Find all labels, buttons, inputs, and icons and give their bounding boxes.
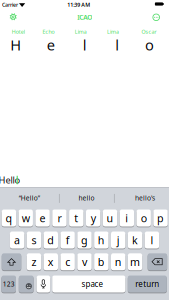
staticText: y bbox=[91, 211, 96, 225]
button[interactable]: Settings bbox=[6, 10, 20, 24]
button[interactable]: 123 bbox=[1, 275, 16, 293]
staticText: g bbox=[81, 233, 88, 247]
staticText: ICAO bbox=[77, 13, 92, 22]
button[interactable]: hello's bbox=[118, 188, 169, 207]
button[interactable]: l bbox=[145, 231, 159, 249]
staticText: w bbox=[22, 211, 30, 225]
button[interactable]: space bbox=[52, 275, 125, 293]
staticText: o bbox=[141, 211, 147, 225]
button[interactable]: Dictate bbox=[37, 275, 50, 293]
staticText: s bbox=[31, 233, 36, 247]
button[interactable]: v bbox=[77, 253, 92, 271]
staticText: o bbox=[145, 35, 154, 55]
button[interactable]: i bbox=[120, 209, 134, 227]
button[interactable]: q bbox=[2, 209, 16, 227]
staticText: r bbox=[57, 211, 61, 225]
button[interactable]: b bbox=[94, 253, 108, 271]
button[interactable]: return bbox=[128, 275, 167, 293]
staticText: Carrier bbox=[2, 1, 18, 8]
staticText: h bbox=[98, 233, 105, 247]
staticText: v bbox=[82, 255, 87, 269]
button[interactable]: m bbox=[128, 253, 142, 271]
staticText: c bbox=[65, 255, 70, 269]
staticText: l bbox=[83, 35, 87, 55]
staticText: a bbox=[14, 233, 20, 247]
staticText: H bbox=[10, 35, 21, 55]
button[interactable]: z bbox=[27, 253, 41, 271]
staticText: “Hello” bbox=[19, 194, 40, 202]
staticText: 11:39 AM bbox=[67, 1, 90, 8]
button[interactable]: Shift bbox=[2, 253, 21, 271]
button[interactable]: y bbox=[86, 209, 100, 227]
staticText: n bbox=[115, 255, 122, 269]
staticText: Hotel bbox=[12, 28, 25, 35]
button[interactable]: Emoji bbox=[19, 275, 34, 293]
staticText: return bbox=[135, 279, 159, 289]
button[interactable]: w bbox=[19, 209, 33, 227]
button[interactable]: Delete bbox=[148, 253, 167, 271]
button[interactable]: k bbox=[128, 231, 142, 249]
staticText: Lima bbox=[75, 28, 87, 35]
button[interactable]: More bbox=[150, 11, 162, 23]
staticText: 123 bbox=[3, 280, 15, 288]
staticText: l bbox=[115, 35, 119, 55]
button[interactable]: r bbox=[52, 209, 67, 227]
staticText: Lima bbox=[107, 28, 119, 35]
button[interactable]: h bbox=[94, 231, 108, 249]
staticText: x bbox=[48, 255, 54, 269]
staticText: e bbox=[40, 211, 46, 225]
staticText: u bbox=[106, 211, 113, 225]
button[interactable]: f bbox=[60, 231, 75, 249]
staticText: d bbox=[47, 233, 54, 247]
staticText: p bbox=[157, 211, 164, 225]
button[interactable]: p bbox=[153, 209, 168, 227]
button[interactable]: g bbox=[77, 231, 92, 249]
button[interactable]: j bbox=[111, 231, 125, 249]
staticText: e bbox=[47, 35, 55, 55]
button[interactable]: n bbox=[111, 253, 125, 271]
staticText: m bbox=[130, 255, 140, 269]
button[interactable]: s bbox=[27, 231, 41, 249]
staticText: t bbox=[74, 211, 78, 225]
button[interactable]: t bbox=[69, 209, 83, 227]
button[interactable]: e bbox=[35, 209, 50, 227]
staticText: i bbox=[125, 211, 128, 225]
button[interactable]: u bbox=[103, 209, 117, 227]
staticText: Hello bbox=[0, 174, 21, 186]
staticText: z bbox=[31, 255, 36, 269]
staticText: f bbox=[66, 233, 70, 247]
button[interactable]: x bbox=[44, 253, 58, 271]
staticText: hello bbox=[79, 194, 95, 202]
button[interactable]: o bbox=[136, 209, 151, 227]
staticText: Oscar bbox=[141, 28, 156, 35]
button[interactable]: hello bbox=[60, 188, 114, 207]
button[interactable]: “Hello” bbox=[2, 188, 56, 207]
button[interactable]: c bbox=[60, 253, 75, 271]
staticText: q bbox=[5, 211, 12, 225]
staticText: space bbox=[81, 279, 103, 289]
staticText: b bbox=[98, 255, 105, 269]
staticText: hello's bbox=[135, 194, 155, 202]
staticText: k bbox=[132, 233, 138, 247]
button[interactable]: d bbox=[44, 231, 58, 249]
staticText: j bbox=[117, 233, 120, 247]
button[interactable]: a bbox=[10, 231, 24, 249]
staticText: Echo bbox=[43, 28, 55, 35]
staticText: l bbox=[150, 233, 153, 247]
